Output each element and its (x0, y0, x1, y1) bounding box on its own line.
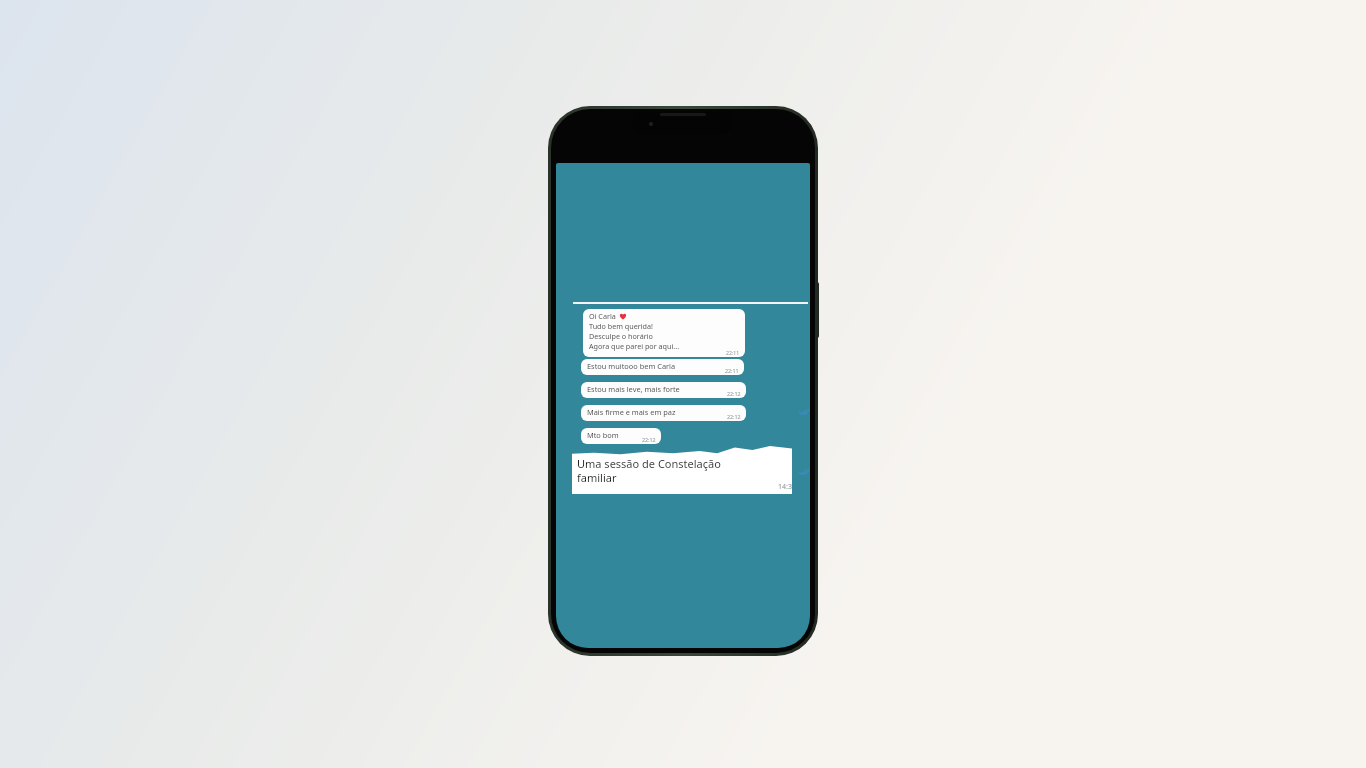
staticText: Mais firme e mais em paz (587, 407, 676, 417)
button[interactable]: Estou muitooo bem Carla (581, 359, 744, 375)
staticText: Agora que parei por aqui... (589, 341, 680, 351)
staticText: 22:12 (727, 390, 741, 397)
staticText: Desculpe o horário (589, 331, 653, 341)
other: Read receipt (799, 468, 810, 476)
button[interactable]: Mais firme e mais em paz (581, 405, 746, 421)
staticText: Mto bom (587, 430, 619, 440)
button[interactable]: Estou mais leve, mais forte (581, 382, 746, 398)
staticText: 22:11 (725, 367, 739, 374)
staticText: Estou mais leve, mais forte (587, 384, 680, 394)
button[interactable]: Mto bom (581, 428, 661, 444)
staticText: Oi Carla (589, 311, 616, 321)
staticText: 22:12 (642, 436, 656, 443)
staticText: Estou muitooo bem Carla (587, 361, 676, 371)
staticText: 14:3 (778, 482, 792, 492)
button[interactable]: Oi Carla (583, 309, 745, 357)
other: Read receipt (799, 408, 810, 416)
staticText: 22:11 (726, 349, 740, 356)
staticText: Tudo bem querida! (589, 321, 653, 331)
staticText: 22:12 (727, 413, 741, 420)
staticText: Uma sessão de Constelação familiar (577, 456, 755, 485)
